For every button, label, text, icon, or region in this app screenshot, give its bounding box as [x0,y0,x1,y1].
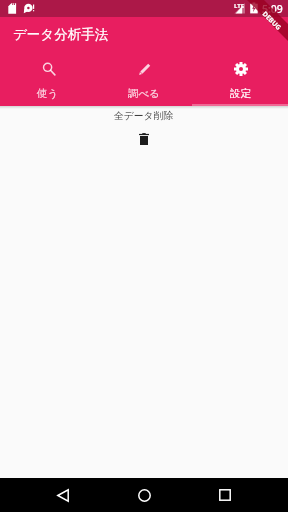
button[interactable]: Recents [210,480,240,510]
staticText: 5:09 [262,2,283,16]
button[interactable]: Home [129,480,159,510]
button[interactable]: 設定 [192,51,288,106]
staticText: データ分析手法 [13,26,109,43]
staticText: 使う [37,87,59,100]
staticText: 設定 [230,87,251,100]
staticText: DEBUG [261,9,283,32]
button[interactable]: 全データ削除 [132,127,156,151]
staticText: LTE [234,2,245,10]
button[interactable]: 使う [0,51,96,106]
button[interactable]: 調べる [96,51,192,106]
staticText: 全データ削除 [114,110,174,122]
button[interactable]: Back [48,480,78,510]
staticText: 調べる [128,87,160,100]
